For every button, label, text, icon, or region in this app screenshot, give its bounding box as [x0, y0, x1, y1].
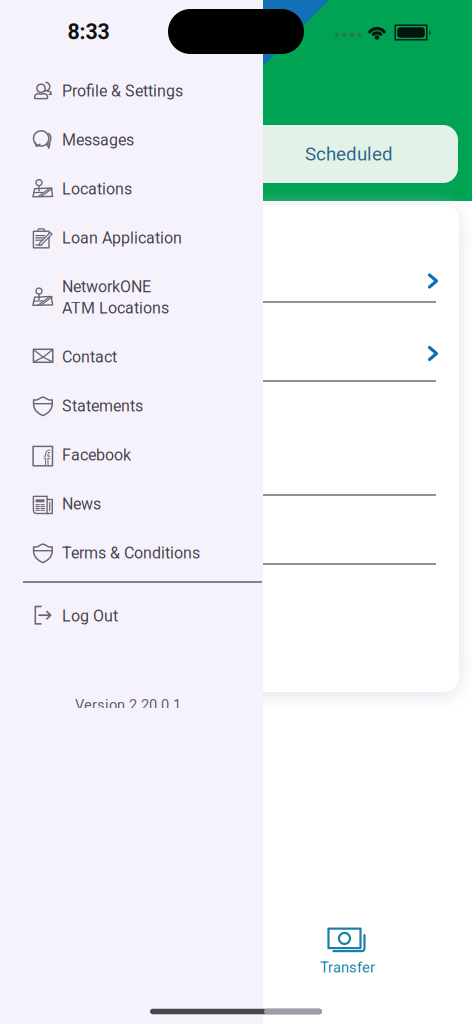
staticText: Contact	[62, 348, 117, 366]
button[interactable]: Statements	[31, 384, 259, 428]
button[interactable]: Log Out	[31, 594, 259, 638]
button[interactable]: News	[31, 482, 259, 526]
staticText: Messages	[62, 131, 134, 149]
staticText: Version 2.20.0.1	[75, 697, 181, 713]
button[interactable]: Transfer	[302, 923, 392, 979]
button[interactable]: Contact	[31, 335, 259, 379]
staticText: Facebook	[62, 446, 131, 464]
staticText: Log Out	[62, 607, 118, 625]
button[interactable]: NetworkONE	[31, 268, 259, 326]
staticText: Loan Application	[62, 229, 182, 247]
staticText: Transfer	[320, 959, 375, 976]
staticText: Statements	[62, 397, 143, 415]
staticText: Scheduled	[305, 143, 393, 165]
button[interactable]: Loan Application	[31, 216, 259, 260]
button[interactable]: Terms & Conditions	[31, 531, 259, 575]
staticText: Profile & Settings	[62, 82, 183, 100]
staticText: Locations	[62, 180, 132, 198]
staticText: ATM Locations	[62, 299, 169, 317]
button[interactable]: Scheduled	[98, 125, 458, 183]
button[interactable]: Profile & Settings	[31, 69, 259, 113]
button[interactable]: Facebook	[31, 433, 259, 477]
staticText: News	[62, 495, 101, 513]
button[interactable]: Locations	[31, 167, 259, 211]
staticText: Terms & Conditions	[62, 544, 200, 562]
button[interactable]: Messages	[31, 118, 259, 162]
staticText: NetworkONE	[62, 278, 151, 296]
staticText: 8:33	[67, 20, 109, 44]
